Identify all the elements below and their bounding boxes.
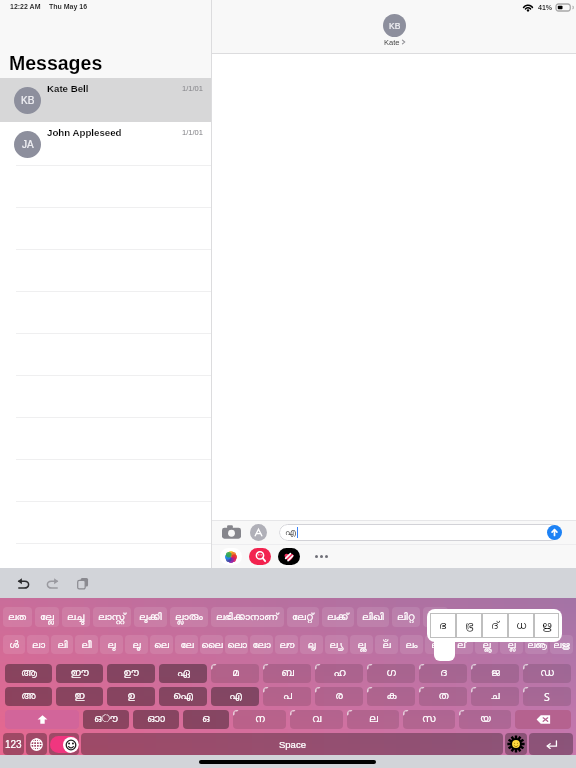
button[interactable]: Return: [529, 733, 573, 755]
button[interactable]: പ: [263, 687, 311, 706]
button[interactable]: അ: [5, 687, 52, 706]
button[interactable]: Settings: [505, 733, 527, 755]
button[interactable]: ലൗ: [275, 635, 298, 654]
button[interactable]: ലൢ: [350, 635, 373, 654]
button[interactable]: Paste: [73, 573, 93, 593]
staticText: 1/1/01: [182, 84, 203, 92]
button[interactable]: ല്ലാരും: [170, 607, 208, 627]
button[interactable]: ല്: [450, 635, 473, 654]
button[interactable]: ലാസ്റ്റ്: [93, 607, 131, 627]
button[interactable]: ഒൗ: [83, 710, 129, 729]
button[interactable]: ന: [233, 710, 286, 729]
button[interactable]: ലൣ: [475, 635, 498, 654]
button[interactable]: ഒ: [183, 710, 229, 729]
button[interactable]: ക: [367, 687, 415, 706]
button[interactable]: ലൃ: [300, 635, 323, 654]
button[interactable]: ഏ: [159, 664, 207, 683]
button[interactable]: More apps: [310, 548, 332, 565]
button[interactable]: ലി: [51, 635, 73, 654]
button[interactable]: ലേ: [175, 635, 198, 654]
button[interactable]: ലിറ്റ: [392, 607, 420, 627]
button[interactable]: JA: [0, 122, 211, 166]
button[interactable]: ലൂ: [125, 635, 148, 654]
button[interactable]: എ: [279, 524, 560, 541]
button[interactable]: ത: [419, 687, 467, 706]
button[interactable]: App Store: [250, 524, 267, 541]
button[interactable]: Emoji: [49, 733, 79, 755]
button[interactable]: 123: [3, 733, 24, 755]
button[interactable]: Photos: [220, 548, 242, 565]
button[interactable]: ഇ: [56, 687, 103, 706]
button[interactable]: ൾ: [3, 635, 25, 654]
button[interactable]: ലച്ചു: [62, 607, 90, 627]
button[interactable]: ലൊ: [225, 635, 248, 654]
button[interactable]: ല്ല: [500, 635, 523, 654]
staticText: അ: [21, 691, 36, 702]
button[interactable]: സ: [403, 710, 455, 729]
button[interactable]: ഋ: [534, 613, 559, 638]
button[interactable]: Send: [547, 525, 562, 540]
button[interactable]: Space: [81, 733, 503, 755]
button[interactable]: ലഭിക്കാനാണ്: [211, 607, 284, 627]
button[interactable]: ലൄ: [325, 635, 348, 654]
button[interactable]: ഹ: [315, 664, 363, 683]
button[interactable]: ഈ: [56, 664, 103, 683]
button[interactable]: ലു: [100, 635, 123, 654]
button[interactable]: ലഁ: [375, 635, 398, 654]
button[interactable]: ല്ലേ: [35, 607, 59, 627]
button[interactable]: ഓാ: [133, 710, 179, 729]
button[interactable]: ലിഖി: [357, 607, 389, 627]
button[interactable]: എ: [211, 687, 259, 706]
button[interactable]: Camera: [221, 525, 241, 540]
button[interactable]: Digital Touch: [278, 548, 300, 565]
button[interactable]: ആ: [5, 664, 52, 683]
staticText: ല്ല: [507, 640, 516, 649]
button[interactable]: യ: [459, 710, 511, 729]
button[interactable]: ധ: [508, 613, 534, 638]
button[interactable]: Shift: [5, 710, 79, 729]
button[interactable]: Stickers: [249, 548, 271, 565]
button[interactable]: KB: [383, 14, 406, 46]
button[interactable]: ഭ്ര: [456, 613, 482, 638]
button[interactable]: ലിം: [423, 607, 448, 627]
button[interactable]: ലോ: [250, 635, 273, 654]
button[interactable]: Undo: [13, 573, 33, 593]
button[interactable]: ബ: [263, 664, 311, 683]
button[interactable]: ദ്: [482, 613, 508, 638]
button[interactable]: ഊ: [107, 664, 155, 683]
staticText: ഒൗ: [94, 714, 118, 725]
button[interactable]: S: [523, 687, 571, 706]
button[interactable]: ല: [347, 710, 399, 729]
button[interactable]: ഗ: [367, 664, 415, 683]
button[interactable]: ഉ: [107, 687, 155, 706]
button[interactable]: ഡ: [523, 664, 571, 683]
staticText: ആ: [21, 668, 37, 679]
button[interactable]: ജ: [471, 664, 519, 683]
button[interactable]: മ: [211, 664, 259, 683]
button[interactable]: ലെ: [150, 635, 173, 654]
button[interactable]: KB: [0, 78, 211, 122]
button[interactable]: ര: [315, 687, 363, 706]
button[interactable]: ലത: [3, 607, 32, 627]
button[interactable]: ലൈ: [200, 635, 223, 654]
staticText: ലീ: [81, 640, 92, 649]
button[interactable]: വ: [290, 710, 343, 729]
button[interactable]: Backspace: [515, 710, 571, 729]
button[interactable]: ലേറ്റ്: [287, 607, 319, 627]
button[interactable]: ഐ: [159, 687, 207, 706]
button[interactable]: ലഃ: [425, 635, 448, 654]
button[interactable]: ലൠ: [550, 635, 573, 654]
button[interactable]: ലാ: [27, 635, 49, 654]
button[interactable]: Switch keyboard: [26, 733, 47, 755]
button[interactable]: ലക്ക്: [322, 607, 354, 627]
button[interactable]: ച: [471, 687, 519, 706]
button[interactable]: Redo: [43, 573, 63, 593]
button[interactable]: ദ: [419, 664, 467, 683]
staticText: S: [544, 690, 550, 704]
staticText: ഡ: [540, 668, 554, 679]
button[interactable]: ലീ: [75, 635, 98, 654]
button[interactable]: ഭ: [430, 613, 456, 638]
button[interactable]: ലം: [400, 635, 423, 654]
button[interactable]: ലൡ: [525, 635, 548, 654]
button[interactable]: ലുക്കി: [134, 607, 167, 627]
